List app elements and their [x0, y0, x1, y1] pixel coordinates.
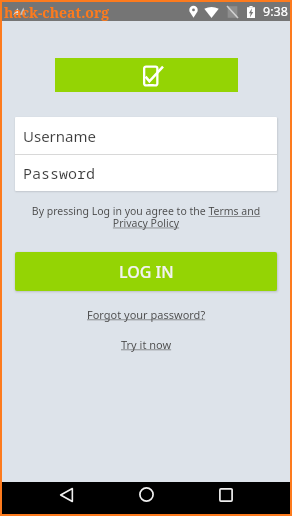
button[interactable]: Password [15, 155, 277, 191]
staticText: Try it now [121, 337, 172, 352]
button[interactable]: Username [15, 117, 277, 154]
staticText: Forgot your password? [87, 307, 206, 322]
button[interactable]: Forgot your password? [81, 305, 212, 324]
staticText: 9:38 [263, 3, 288, 20]
button[interactable]: Back [54, 482, 79, 507]
staticText: Username [23, 126, 96, 146]
staticText: LOG IN [119, 261, 174, 283]
button[interactable]: Home [134, 482, 159, 507]
button[interactable]: Try it now [115, 335, 178, 354]
button[interactable]: Recent apps [213, 482, 238, 507]
staticText: hack-cheat.org [4, 3, 110, 22]
button[interactable]: LOG IN [15, 252, 277, 291]
button[interactable]: Check device [55, 58, 238, 92]
staticText: Password [23, 163, 96, 183]
staticText: By pressing Log in you agree to the Term… [26, 204, 266, 230]
